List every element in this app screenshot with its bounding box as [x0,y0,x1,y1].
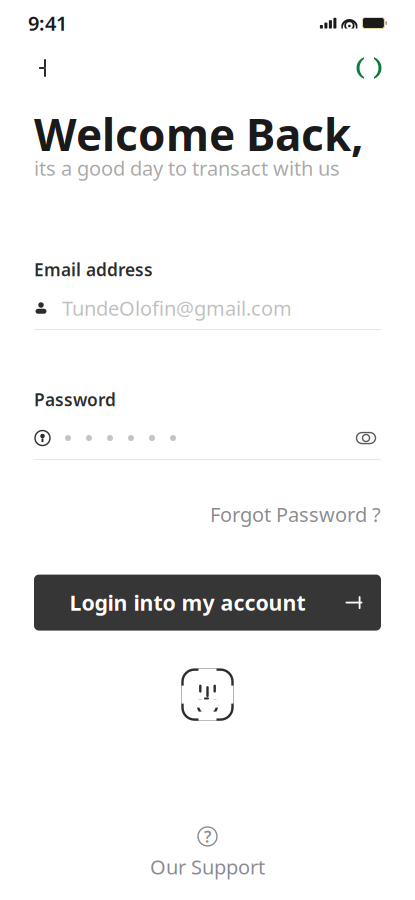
button[interactable]: Login into my account [34,575,381,631]
staticText: ? [204,826,211,847]
button[interactable]: Show password [351,425,381,451]
button[interactable]: ? [150,826,265,880]
staticText: its a good day to transact with us [34,155,340,181]
staticText: Our Support [150,853,265,880]
staticText: Forgot Password ? [210,501,381,528]
staticText: Welcome Back, [34,105,364,163]
staticText: TundeOlofin@gmail.com [62,295,292,321]
staticText: Login into my account [69,588,305,617]
button[interactable]: Back [30,53,60,83]
staticText: 9:41 [28,10,67,36]
staticText: Email address [34,258,153,281]
staticText: Password [34,388,116,411]
button[interactable]: Sign in with Face ID [181,669,233,721]
button[interactable]: Forgot Password ? [210,493,381,536]
